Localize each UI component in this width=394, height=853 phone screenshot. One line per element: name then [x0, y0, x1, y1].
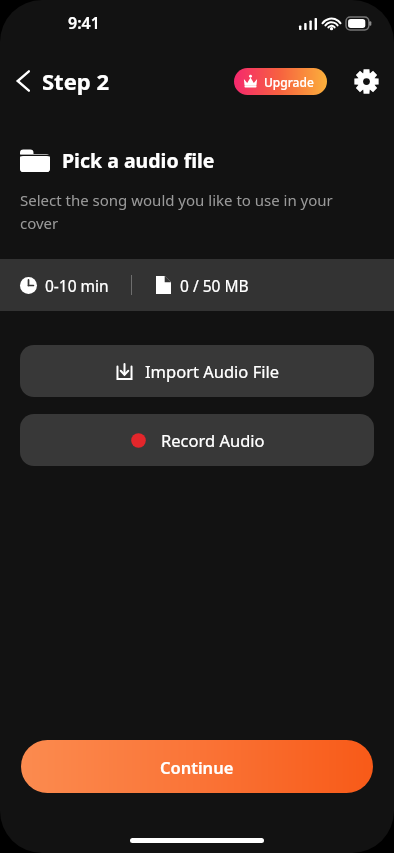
staticText: Step 2 — [42, 66, 110, 96]
button[interactable]: Back — [8, 62, 118, 100]
staticText: Continue — [160, 756, 234, 778]
staticText: Upgrade — [264, 74, 314, 90]
button[interactable]: Continue — [21, 740, 373, 793]
staticText: Import Audio File — [145, 360, 280, 382]
staticText: Record Audio — [161, 429, 265, 451]
other: Back — [16, 70, 30, 92]
button[interactable]: Import Audio File — [20, 345, 374, 397]
button[interactable]: Settings — [346, 62, 386, 100]
staticText: Pick a audio file — [62, 147, 215, 174]
button[interactable]: Record Audio — [20, 414, 374, 466]
staticText: 9:41 — [68, 12, 100, 34]
button[interactable]: Upgrade — [234, 68, 327, 95]
staticText: 0 / 50 MB — [180, 275, 249, 296]
staticText: Select the song would you like to use in… — [20, 190, 356, 233]
staticText: 0-10 min — [45, 275, 109, 296]
